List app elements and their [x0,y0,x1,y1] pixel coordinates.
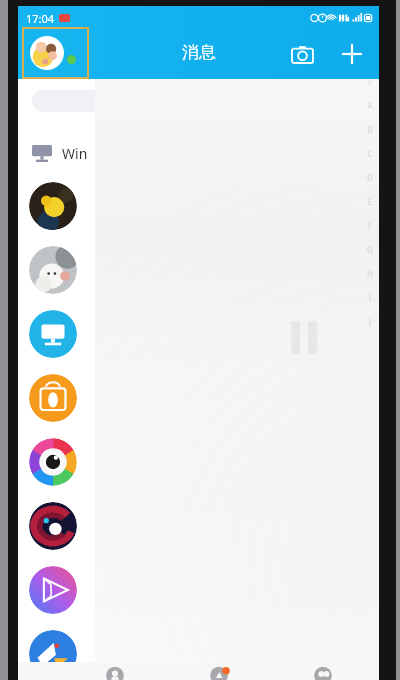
staticText: A [364,100,376,111]
button[interactable]: Add [335,37,369,71]
button[interactable]: Contact 6 [29,502,77,550]
button[interactable]: Discover [201,662,237,680]
button[interactable]: Contact 2 [29,246,77,294]
button[interactable]: Win [32,136,88,170]
button[interactable]: Contact 1 [29,182,77,230]
button[interactable]: Camera [285,37,319,71]
staticText: F [364,220,376,231]
staticText: Win [62,144,88,163]
button[interactable]: Contact 3 [29,310,77,358]
staticText: I [364,292,376,303]
button[interactable]: Me [305,662,341,680]
button[interactable] [32,90,102,112]
staticText: H [364,268,376,279]
staticText: G [364,244,376,255]
button[interactable]: Contact 4 [29,374,77,422]
button[interactable]: Contact 5 [29,438,77,486]
staticText: B [364,124,376,135]
staticText: 消息 [182,42,216,63]
button[interactable]: Contact 7 [29,566,77,614]
button[interactable]: Contacts [97,662,133,680]
button[interactable]: Contact 8 [29,630,77,678]
staticText: J [364,316,376,327]
staticText: ☆ [364,78,376,87]
staticText: C [364,148,376,159]
staticText: D [364,172,376,183]
staticText: 17:04 [26,11,55,26]
button[interactable]: Profile [23,28,88,78]
staticText: E [364,196,376,207]
